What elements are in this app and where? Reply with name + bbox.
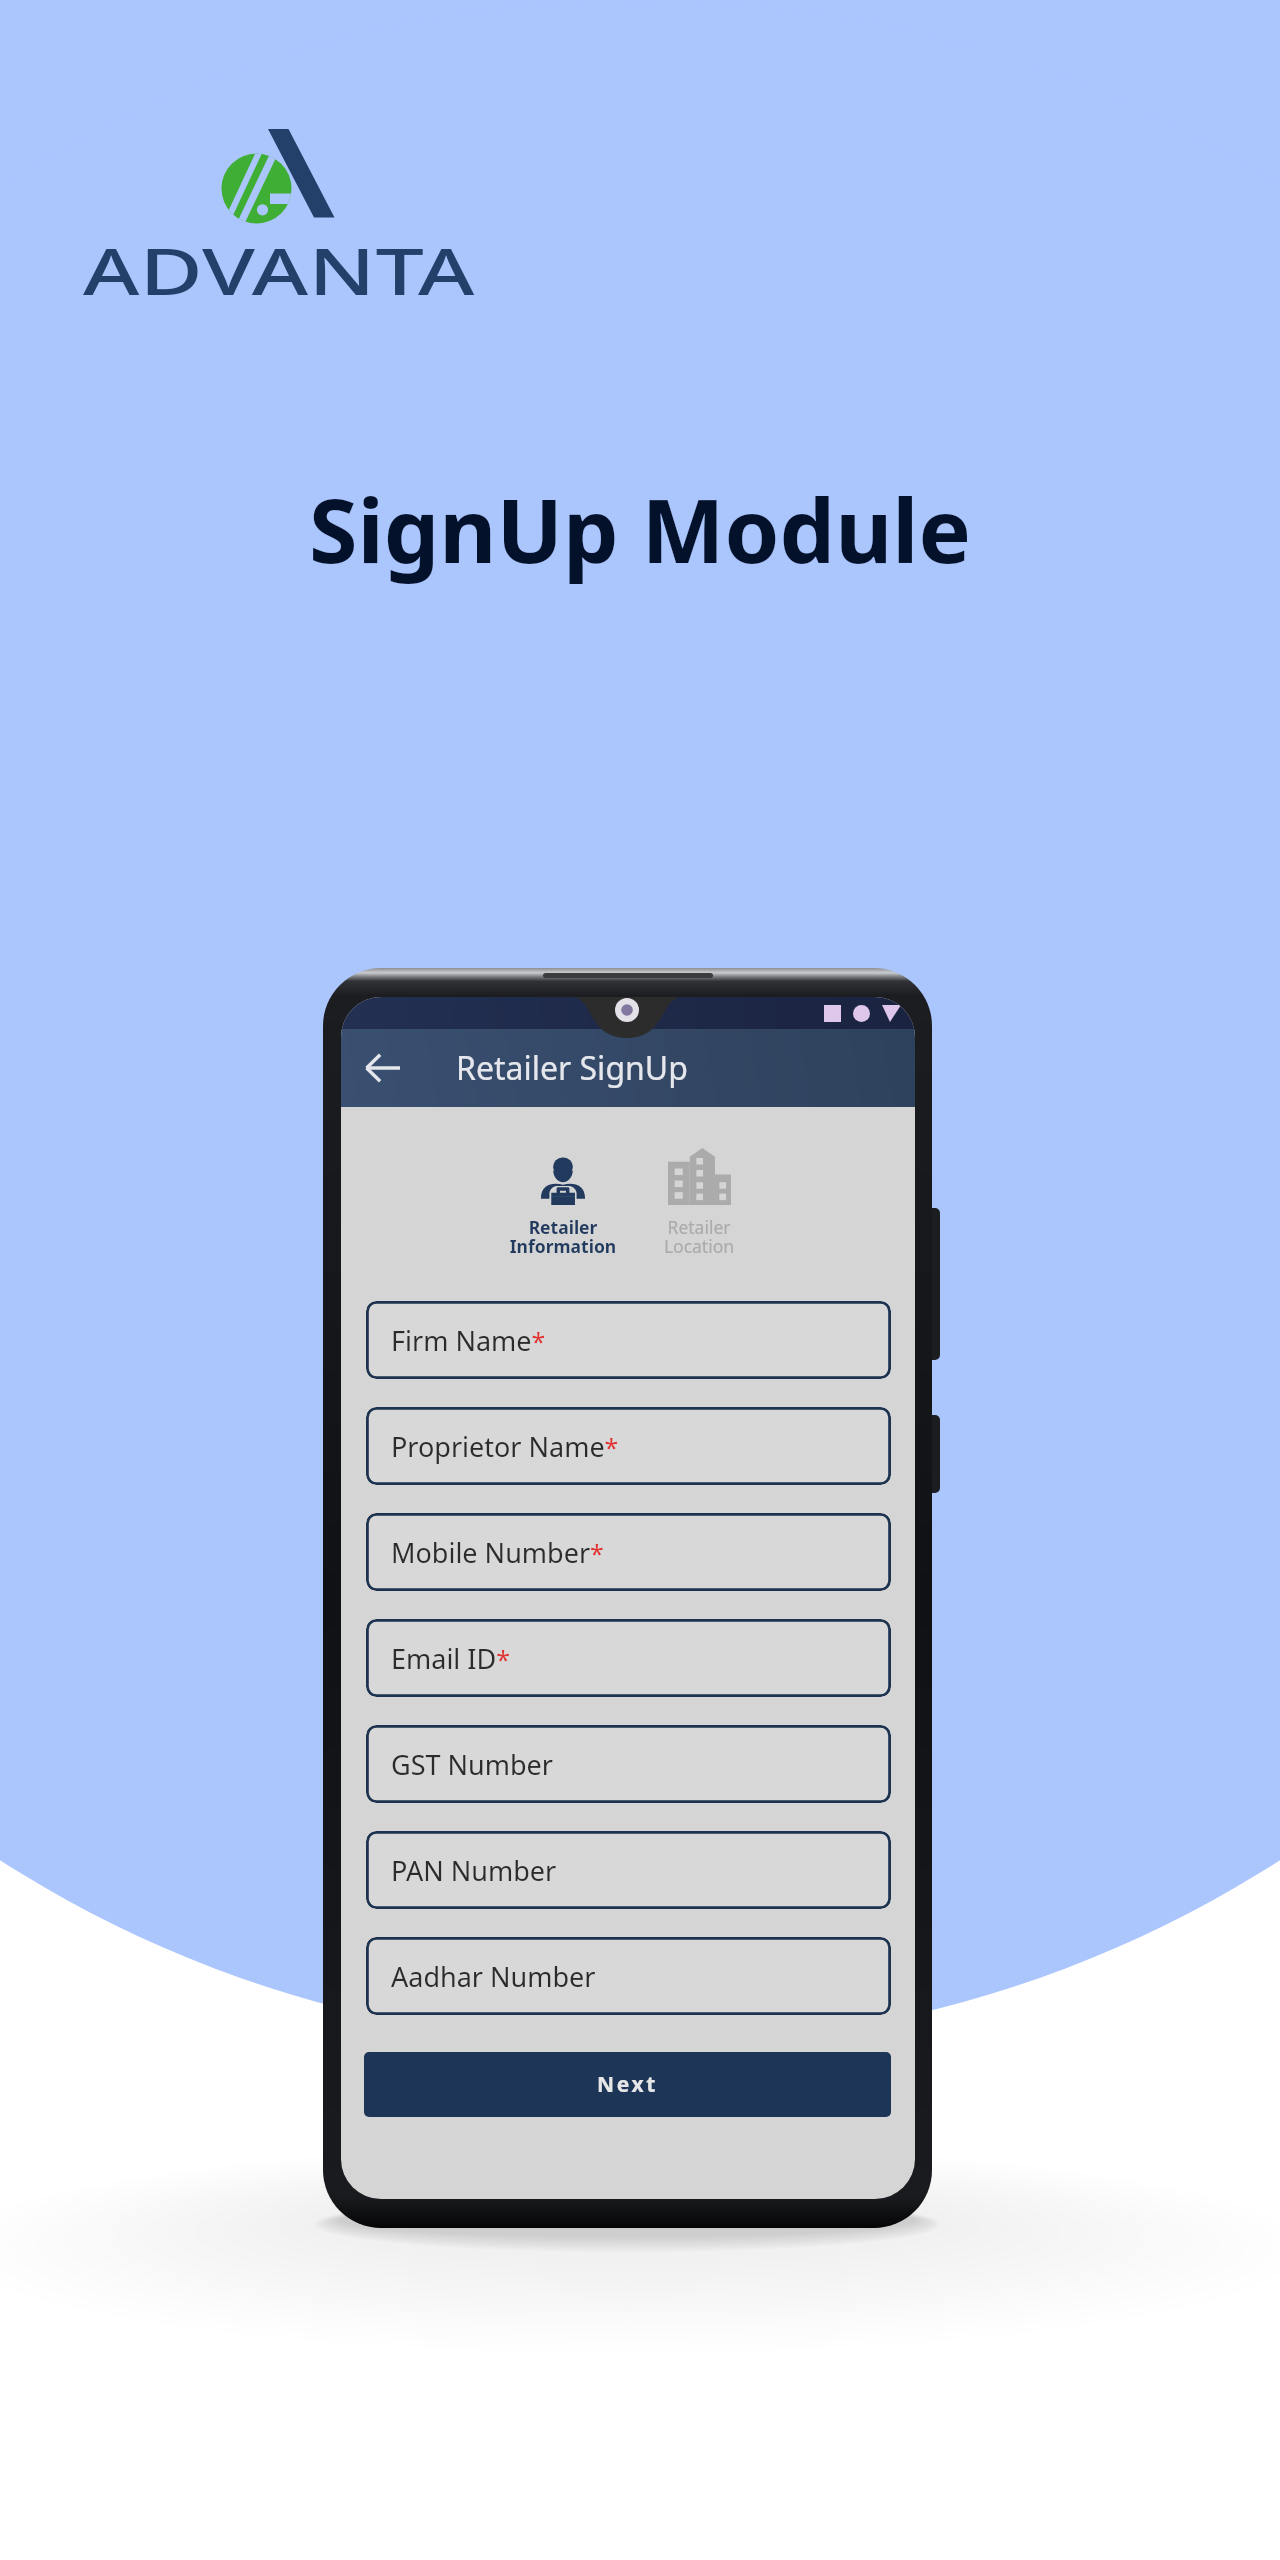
button[interactable]: Aadhar Number <box>366 1937 891 2015</box>
staticText: Proprietor Name* <box>391 1428 619 1465</box>
button[interactable]: Mobile Number* <box>366 1513 891 1591</box>
button[interactable]: Back <box>355 1040 411 1096</box>
staticText: Aadhar Number <box>391 1958 596 1995</box>
button[interactable]: Email ID* <box>366 1619 891 1697</box>
button[interactable]: Retailer Location <box>629 1139 769 1259</box>
button[interactable]: GST Number <box>366 1725 891 1803</box>
button[interactable]: Proprietor Name* <box>366 1407 891 1485</box>
staticText: SignUp Module <box>0 469 1280 589</box>
button[interactable]: PAN Number <box>366 1831 891 1909</box>
staticText: Next <box>597 2070 658 2099</box>
staticText: ADVANTA <box>83 227 476 314</box>
staticText: PAN Number <box>391 1852 557 1889</box>
staticText: Firm Name* <box>391 1322 546 1359</box>
staticText: Mobile Number* <box>391 1534 604 1571</box>
staticText: GST Number <box>391 1746 553 1783</box>
staticText: Retailer Information <box>493 1215 633 1258</box>
button[interactable]: Next <box>364 2052 891 2117</box>
staticText: Email ID* <box>391 1640 510 1677</box>
staticText: Retailer Location <box>629 1215 769 1258</box>
button[interactable]: Firm Name* <box>366 1301 891 1379</box>
staticText: Retailer SignUp <box>456 1046 688 1090</box>
button[interactable]: Retailer Information <box>493 1139 633 1259</box>
